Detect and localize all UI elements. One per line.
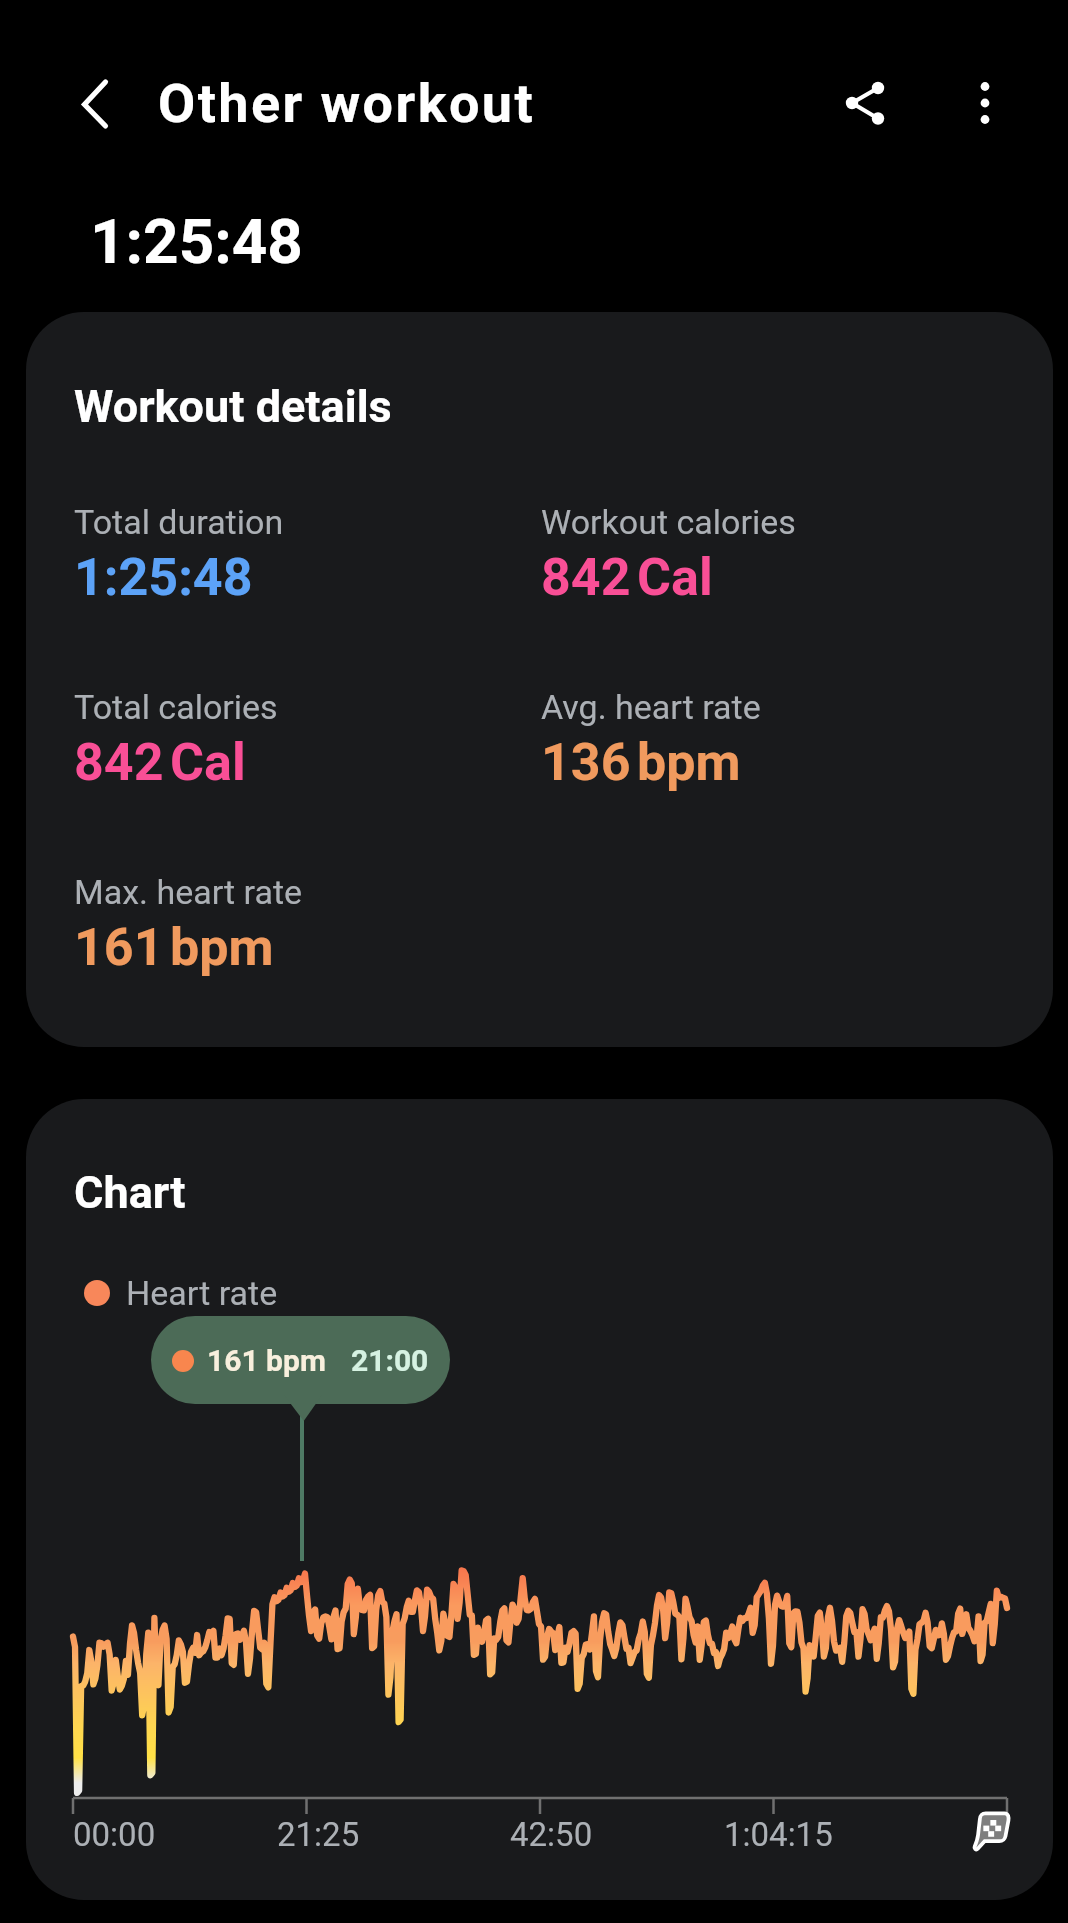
staticText: Cal [170,732,246,793]
staticText: Other workout [158,72,536,135]
button[interactable]: Share [820,58,910,148]
staticText: bpm [637,732,741,793]
staticText: 1:25:48 [74,547,253,608]
staticText: 21:00 [351,1343,429,1378]
button[interactable]: Finish [972,1813,1008,1849]
button[interactable]: More options [940,58,1030,148]
staticText: 1:25:48 [90,205,303,278]
staticText: Workout details [74,380,392,433]
staticText: 42:50 [510,1815,593,1854]
staticText: Max. heart rate [74,872,303,912]
staticText: 842 [74,732,164,793]
staticText: Heart rate [126,1273,278,1313]
staticText: Total calories [74,687,278,727]
staticText: 842 [541,547,631,608]
staticText: Chart [74,1166,186,1219]
button[interactable]: Navigate up [53,62,137,146]
button[interactable]: Workout details [26,312,1053,1047]
staticText: 21:25 [277,1815,360,1854]
staticText: Workout calories [541,502,796,542]
staticText: 161 bpm [207,1343,326,1378]
staticText: Avg. heart rate [541,687,761,727]
staticText: 1:04:15 [724,1815,833,1854]
staticText: Total duration [74,502,284,542]
staticText: bpm [170,917,274,978]
button[interactable]: 161 bpm [151,1316,450,1404]
button[interactable]: Chart [26,1099,1053,1900]
staticText: 136 [541,732,631,793]
staticText: Cal [637,547,713,608]
staticText: 161 [74,917,164,978]
staticText: 00:00 [73,1815,156,1854]
